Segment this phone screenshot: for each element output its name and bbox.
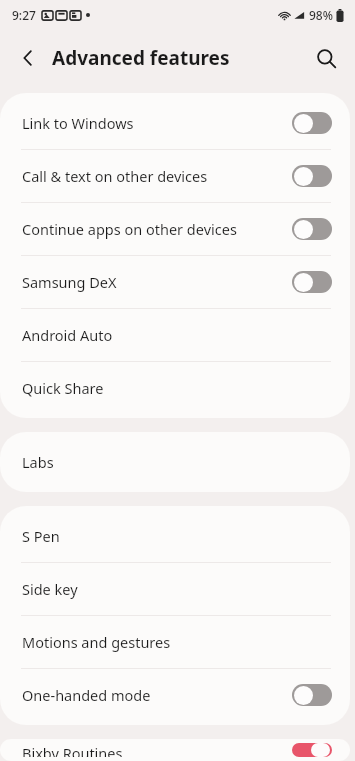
button[interactable]: S Pen — [0, 510, 350, 562]
button[interactable]: Motions and gestures — [0, 616, 350, 668]
button[interactable]: Search — [307, 39, 345, 77]
button[interactable]: Labs — [0, 436, 350, 488]
button[interactable] — [292, 218, 332, 240]
button[interactable] — [292, 271, 332, 293]
staticText: 9:27 — [12, 7, 36, 23]
button[interactable] — [292, 165, 332, 187]
staticText: Continue apps on other devices — [22, 219, 292, 239]
staticText: 98% — [309, 7, 333, 23]
staticText: Quick Share — [22, 378, 332, 398]
button[interactable]: Android Auto — [0, 309, 350, 361]
staticText: Bixby Routines — [22, 743, 292, 757]
button[interactable]: Continue apps on other devices — [0, 203, 350, 255]
staticText: Labs — [22, 452, 332, 472]
button[interactable]: One-handed mode — [0, 669, 350, 721]
button[interactable]: Samsung DeX — [0, 256, 350, 308]
button[interactable]: Link to Windows — [0, 97, 350, 149]
staticText: Motions and gestures — [22, 632, 332, 652]
staticText: Samsung DeX — [22, 272, 292, 292]
button[interactable]: Side key — [0, 563, 350, 615]
button[interactable]: Back — [10, 40, 46, 76]
staticText: Android Auto — [22, 325, 332, 345]
button[interactable]: Bixby Routines — [0, 743, 350, 757]
button[interactable] — [292, 743, 332, 757]
button[interactable]: Quick Share — [0, 362, 350, 414]
button[interactable] — [292, 684, 332, 706]
staticText: S Pen — [22, 526, 332, 546]
staticText: Call & text on other devices — [22, 166, 292, 186]
button[interactable]: Call & text on other devices — [0, 150, 350, 202]
staticText: One-handed mode — [22, 685, 292, 705]
staticText: Side key — [22, 579, 332, 599]
staticText: Link to Windows — [22, 113, 292, 133]
staticText: Advanced features — [52, 45, 230, 71]
button[interactable] — [292, 112, 332, 134]
